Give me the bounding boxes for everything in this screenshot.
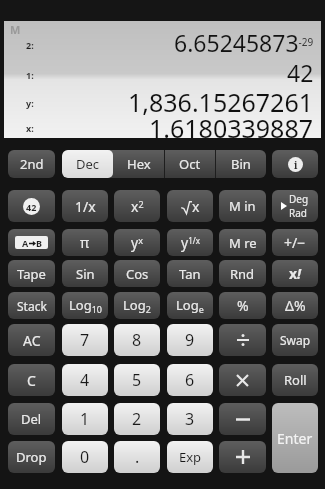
staticText: y1/x (181, 233, 200, 252)
button[interactable]: x2 (114, 190, 160, 222)
staticText: Log10 (69, 296, 102, 315)
staticText: 8 (132, 329, 142, 351)
staticText: 42 (287, 57, 314, 88)
staticText: Roll (284, 371, 307, 389)
staticText: 7 (80, 329, 90, 351)
staticText: x: (26, 122, 34, 134)
button[interactable]: Drop (8, 441, 55, 473)
staticText: 1 (80, 408, 90, 430)
staticText: π (80, 233, 90, 252)
staticText: 2nd (20, 155, 44, 173)
staticText: Swap (280, 332, 311, 348)
button[interactable]: Square root (167, 190, 213, 222)
staticText: A (22, 237, 29, 249)
button[interactable]: Enter (272, 403, 318, 473)
staticText: 1,836.15267261 (128, 85, 314, 119)
staticText: 1: (26, 69, 34, 81)
button[interactable]: Info (272, 150, 318, 178)
staticText: 5 (132, 369, 142, 391)
button[interactable]: Bin (216, 150, 266, 178)
button[interactable]: Multiply (219, 364, 266, 396)
button[interactable]: Log10 (62, 292, 108, 319)
button[interactable]: Dec (62, 150, 113, 178)
button[interactable]: Sin (62, 260, 108, 287)
staticText: 9 (185, 329, 195, 351)
staticText: M (10, 22, 21, 37)
button[interactable]: Tape (8, 260, 55, 287)
button[interactable]: Del (8, 403, 55, 435)
button[interactable]: 9 (167, 324, 213, 356)
button[interactable]: Tan (167, 260, 213, 287)
button[interactable]: 4 (62, 364, 108, 396)
staticText: Oct (179, 155, 201, 173)
staticText: Bin (231, 155, 251, 173)
staticText: yx (131, 233, 143, 252)
staticText: y: (26, 97, 34, 109)
staticText: Cos (126, 265, 149, 283)
staticText: 2: (26, 39, 34, 51)
staticText: 1/x (75, 197, 96, 216)
button[interactable]: 2 (114, 403, 160, 435)
button[interactable]: Divide (219, 324, 266, 356)
button[interactable]: x! (272, 260, 318, 287)
staticText: +/− (284, 233, 306, 252)
staticText: Drop (16, 448, 47, 466)
staticText: 4 (80, 369, 90, 391)
button[interactable]: Roll (272, 364, 318, 396)
button[interactable]: AC (8, 324, 55, 356)
staticText: Sin (76, 265, 95, 283)
staticText: 0 (80, 446, 90, 468)
staticText: Δ% (285, 296, 306, 315)
button[interactable]: 3 (167, 403, 213, 435)
button[interactable]: 1 (62, 403, 108, 435)
button[interactable]: 8 (114, 324, 160, 356)
button[interactable]: yx (114, 229, 160, 256)
button[interactable]: Degrees or radians (272, 190, 318, 222)
staticText: Enter (277, 429, 313, 448)
button[interactable]: . (114, 441, 160, 473)
staticText: . (135, 446, 140, 468)
button[interactable]: Stack (8, 292, 55, 319)
staticText: AC (23, 331, 41, 350)
button[interactable]: Swap (272, 324, 318, 356)
staticText: B (36, 237, 42, 249)
staticText: Hex (127, 155, 151, 173)
staticText: 2 (132, 408, 142, 430)
button[interactable]: Plus (219, 441, 266, 473)
button[interactable]: 5 (114, 364, 160, 396)
button[interactable]: 7 (62, 324, 108, 356)
button[interactable]: +/− (272, 229, 318, 256)
button[interactable]: Cos (114, 260, 160, 287)
button[interactable]: 42 constants (8, 190, 55, 222)
button[interactable]: Δ% (272, 292, 318, 319)
button[interactable]: Oct (165, 150, 215, 178)
staticText: M in (229, 197, 256, 215)
staticText: 3 (185, 408, 195, 430)
button[interactable]: A to B conversion (8, 229, 55, 256)
button[interactable]: 0 (62, 441, 108, 473)
button[interactable]: Hex (114, 150, 164, 178)
button[interactable]: Minus (219, 403, 266, 435)
staticText: x (192, 197, 200, 216)
staticText: 6.65245873-29 (174, 27, 314, 58)
staticText: Log2 (123, 296, 151, 315)
button[interactable]: Exp (167, 441, 213, 473)
button[interactable]: M re (219, 229, 266, 256)
staticText: Rad (289, 206, 307, 220)
button[interactable]: Rnd (219, 260, 266, 287)
button[interactable]: 1/x (62, 190, 108, 222)
staticText: Loge (176, 296, 204, 315)
button[interactable]: Log2 (114, 292, 160, 319)
button[interactable]: M in (219, 190, 266, 222)
button[interactable]: 6 (167, 364, 213, 396)
staticText: i (294, 158, 298, 172)
staticText: 42 (26, 201, 37, 213)
button[interactable]: % (219, 292, 266, 319)
button[interactable]: π (62, 229, 108, 256)
staticText: Dec (76, 155, 100, 173)
button[interactable]: C (8, 364, 55, 396)
button[interactable]: y1/x (167, 229, 213, 256)
staticText: Deg (289, 192, 309, 206)
button[interactable]: Loge (167, 292, 213, 319)
button[interactable]: 2nd (8, 150, 55, 178)
